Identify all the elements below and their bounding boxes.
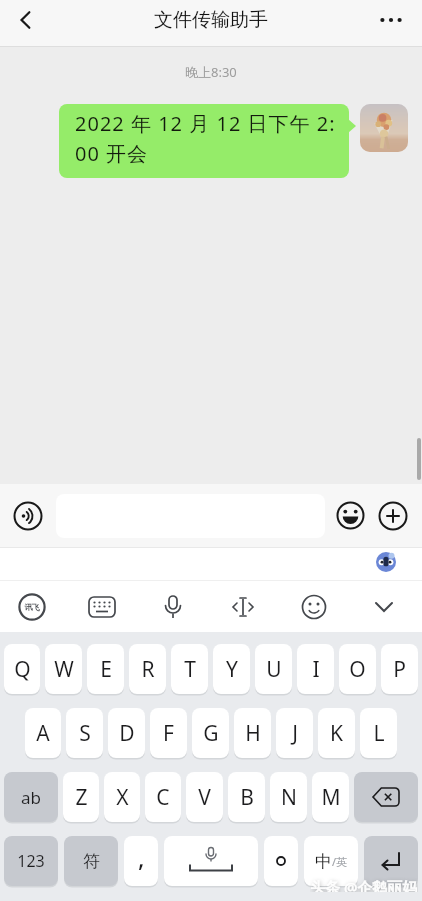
staticText: U bbox=[266, 655, 282, 684]
button[interactable]: J bbox=[276, 708, 313, 758]
staticText: F bbox=[163, 719, 174, 748]
button[interactable]: Q bbox=[4, 644, 40, 694]
button[interactable] bbox=[164, 836, 258, 886]
button[interactable] bbox=[376, 5, 406, 35]
button[interactable]: Y bbox=[213, 644, 250, 694]
staticText: Q bbox=[14, 655, 31, 684]
staticText: R bbox=[141, 655, 155, 684]
staticText: /英 bbox=[332, 854, 348, 869]
staticText: ab bbox=[21, 786, 41, 809]
button[interactable]: W bbox=[45, 644, 82, 694]
button[interactable]: D bbox=[108, 708, 145, 758]
button[interactable]: H bbox=[234, 708, 271, 758]
staticText: 晚上8:30 bbox=[185, 63, 237, 81]
button[interactable] bbox=[376, 552, 396, 572]
staticText: , bbox=[138, 841, 145, 874]
button[interactable]: 123 bbox=[4, 836, 58, 886]
button[interactable] bbox=[264, 836, 298, 886]
staticText: L bbox=[373, 719, 385, 748]
staticText: H bbox=[245, 719, 261, 748]
button[interactable] bbox=[336, 501, 365, 530]
button[interactable] bbox=[13, 501, 43, 531]
button[interactable] bbox=[364, 836, 418, 886]
button[interactable]: F bbox=[150, 708, 187, 758]
staticText: T bbox=[184, 655, 196, 684]
button[interactable]: U bbox=[255, 644, 292, 694]
button[interactable] bbox=[360, 104, 408, 152]
staticText: A bbox=[36, 719, 50, 748]
staticText: Y bbox=[226, 655, 238, 684]
staticText: S bbox=[79, 719, 91, 748]
button[interactable]: V bbox=[186, 772, 223, 822]
button[interactable]: O bbox=[339, 644, 376, 694]
button[interactable] bbox=[12, 6, 40, 34]
staticText: B bbox=[240, 783, 254, 812]
button[interactable]: C bbox=[145, 772, 181, 822]
button[interactable]: , bbox=[124, 836, 158, 886]
button[interactable]: 讯飞 bbox=[14, 589, 50, 625]
button[interactable]: X bbox=[104, 772, 140, 822]
button[interactable]: I bbox=[297, 644, 334, 694]
button[interactable]: 中 bbox=[304, 836, 358, 886]
button[interactable] bbox=[84, 589, 120, 625]
staticText: G bbox=[203, 719, 219, 748]
button[interactable]: M bbox=[312, 772, 349, 822]
button[interactable]: 符 bbox=[64, 836, 118, 886]
button[interactable]: R bbox=[129, 644, 166, 694]
staticText: C bbox=[156, 783, 170, 812]
staticText: 00 开会 bbox=[75, 140, 149, 167]
staticText: I bbox=[312, 655, 320, 684]
staticText: 头条 @企鹅丽妈 bbox=[310, 877, 418, 892]
staticText: P bbox=[393, 655, 406, 684]
button[interactable]: S bbox=[66, 708, 103, 758]
staticText: X bbox=[116, 783, 129, 812]
staticText: 中 bbox=[315, 851, 332, 872]
staticText: M bbox=[321, 783, 341, 812]
staticText: D bbox=[119, 719, 135, 748]
button[interactable] bbox=[354, 772, 418, 822]
button[interactable] bbox=[296, 589, 332, 625]
button[interactable]: N bbox=[270, 772, 307, 822]
staticText: E bbox=[100, 655, 112, 684]
staticText: 符 bbox=[83, 851, 100, 872]
staticText: 123 bbox=[17, 850, 45, 872]
button[interactable]: B bbox=[228, 772, 265, 822]
staticText: 文件传输助手 bbox=[154, 8, 268, 32]
staticText: O bbox=[349, 655, 366, 684]
button[interactable]: 2022 年 12 月 12 日下午 2: bbox=[59, 104, 349, 178]
button[interactable] bbox=[378, 501, 408, 531]
button[interactable]: P bbox=[381, 644, 418, 694]
button[interactable]: K bbox=[318, 708, 355, 758]
button[interactable]: E bbox=[87, 644, 124, 694]
button[interactable]: L bbox=[360, 708, 397, 758]
staticText: 讯飞 bbox=[25, 602, 39, 612]
button[interactable] bbox=[225, 589, 261, 625]
button[interactable]: ab bbox=[4, 772, 58, 822]
staticText: K bbox=[330, 719, 343, 748]
button[interactable]: A bbox=[25, 708, 61, 758]
button[interactable]: T bbox=[171, 644, 208, 694]
button[interactable]: G bbox=[192, 708, 229, 758]
button[interactable] bbox=[155, 589, 191, 625]
staticText: V bbox=[198, 783, 211, 812]
staticText: W bbox=[54, 655, 74, 684]
button[interactable]: Z bbox=[63, 772, 99, 822]
staticText: J bbox=[292, 719, 298, 748]
staticText: 2022 年 12 月 12 日下午 2: bbox=[75, 110, 336, 137]
staticText: N bbox=[281, 783, 297, 812]
staticText: Z bbox=[75, 783, 88, 812]
button[interactable] bbox=[366, 589, 402, 625]
